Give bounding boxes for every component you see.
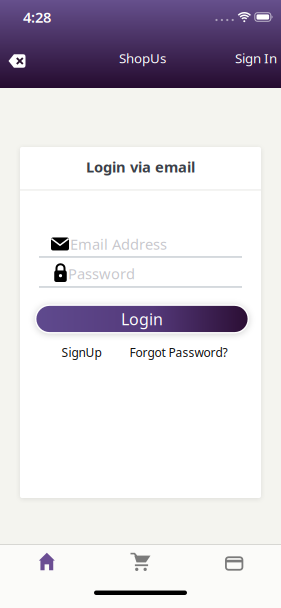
staticText: Email Address <box>70 234 167 254</box>
staticText: Sign In <box>235 49 277 67</box>
button[interactable]: Cart <box>94 545 187 578</box>
button[interactable]: Forgot Password? <box>129 344 227 360</box>
button[interactable]: SignUp <box>61 344 101 360</box>
staticText: ShopUs <box>119 49 166 67</box>
button[interactable]: Sign In <box>235 52 277 70</box>
staticText: Forgot Password? <box>129 344 227 360</box>
staticText: Login <box>121 308 163 330</box>
button[interactable]: Login <box>35 304 249 333</box>
staticText: 4:28 <box>23 7 51 27</box>
staticText: SignUp <box>61 344 101 360</box>
button[interactable]: Back <box>4 50 30 72</box>
button[interactable]: Home <box>0 545 94 578</box>
button[interactable]: Payments <box>187 545 281 578</box>
staticText: Login via email <box>86 157 195 176</box>
staticText: Password <box>68 264 135 283</box>
